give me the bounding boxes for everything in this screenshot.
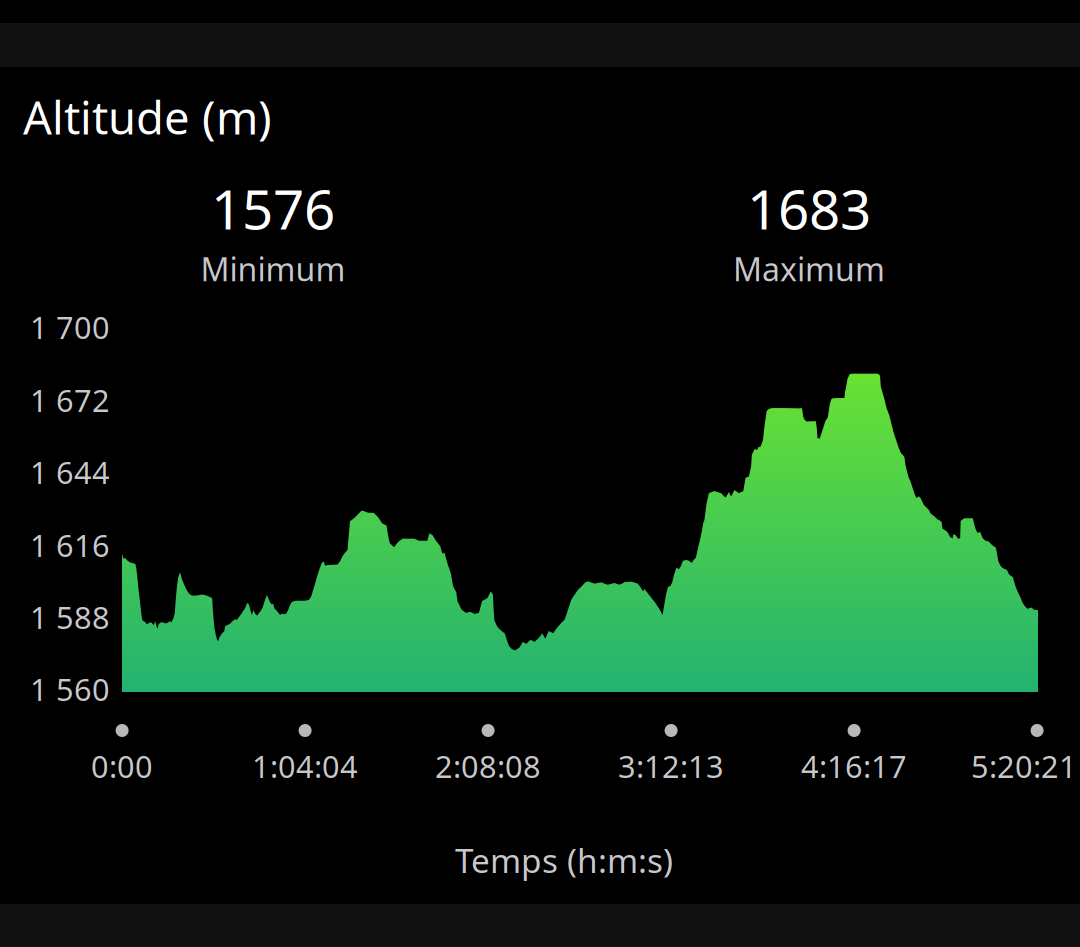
staticText: 3:12:13 — [618, 746, 724, 786]
staticText: 1:04:04 — [252, 746, 358, 786]
staticText: Minimum — [200, 248, 345, 290]
staticText: 1 700 — [30, 307, 110, 347]
staticText: 1683 — [747, 172, 871, 245]
staticText: Altitude (m) — [23, 87, 272, 147]
staticText: Maximum — [733, 248, 885, 290]
staticText: 1 588 — [30, 597, 110, 637]
staticText: 1 672 — [30, 380, 110, 420]
staticText: 4:16:17 — [801, 746, 907, 786]
staticText: 1 560 — [30, 669, 110, 709]
staticText: 2:08:08 — [435, 746, 541, 786]
staticText: 0:00 — [91, 746, 153, 786]
staticText: 1 644 — [30, 452, 110, 492]
staticText: Temps (h:m:s) — [455, 838, 673, 882]
staticText: 5:20:21 — [971, 746, 1077, 786]
staticText: 1576 — [211, 172, 335, 245]
button[interactable]: Altitude chart — [0, 0, 1080, 947]
staticText: 1 616 — [30, 525, 110, 565]
